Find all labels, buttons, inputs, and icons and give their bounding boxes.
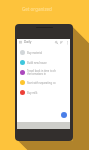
- staticText: Travel back in time to ch: [27, 69, 56, 72]
- button[interactable]: Add task: [61, 112, 67, 118]
- staticText: Start with separating co: [27, 81, 56, 84]
- button[interactable]: Travel back in time to ch: [17, 67, 70, 77]
- button[interactable]: Build new house: [17, 57, 70, 67]
- button[interactable]: Buy material: [17, 47, 70, 57]
- staticText: Build new house: [27, 61, 47, 64]
- staticText: Daily: [24, 40, 32, 44]
- staticText: Get organized: [22, 6, 52, 12]
- staticText: Buy milk: [27, 91, 38, 94]
- button[interactable]: More options: [66, 41, 69, 44]
- button[interactable]: Buy milk: [17, 87, 70, 97]
- button[interactable]: Search: [55, 41, 58, 44]
- button[interactable]: Start with separating co: [17, 77, 70, 87]
- button[interactable]: Sort: [60, 41, 63, 44]
- staticText: Buy material: [27, 51, 43, 54]
- staticText: the tomatoes in: [27, 72, 46, 75]
